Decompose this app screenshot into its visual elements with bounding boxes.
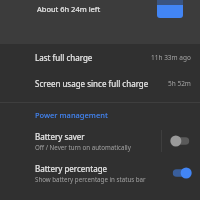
button[interactable]: Battery percentage on — [162, 157, 200, 189]
staticText: 11h 33m ago — [151, 53, 191, 62]
button[interactable]: Last full charge — [0, 44, 200, 70]
button[interactable]: Battery saver — [0, 125, 200, 157]
staticText: Power management — [35, 110, 108, 120]
staticText: Battery saver — [35, 131, 85, 142]
button[interactable]: Screen usage since full charge — [0, 70, 200, 96]
staticText: Screen usage since full charge — [35, 78, 149, 89]
staticText: Show battery percentage in status bar — [35, 175, 146, 183]
staticText: Last full charge — [35, 52, 93, 63]
staticText: About 6h 24m left — [37, 4, 101, 14]
button[interactable]: Battery saver off — [162, 125, 200, 157]
staticText: 5h 52m — [168, 79, 191, 88]
staticText: Off / Never turn on automatically — [35, 143, 131, 151]
staticText: Battery percentage — [35, 163, 108, 174]
button[interactable]: Battery percentage — [0, 157, 200, 189]
